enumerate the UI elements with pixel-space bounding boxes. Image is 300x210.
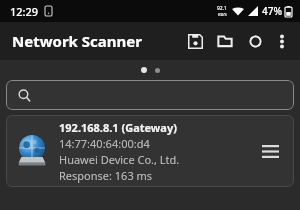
staticText: Response: 163 ms bbox=[59, 168, 153, 183]
staticText: 12:29 bbox=[10, 4, 39, 19]
button[interactable]: 192.168.8.1 (Gateway) bbox=[6, 115, 294, 187]
staticText: Network Scanner bbox=[12, 31, 142, 51]
button[interactable]: Device options bbox=[256, 137, 284, 165]
button[interactable]: Search devices bbox=[6, 80, 294, 110]
button[interactable]: Save bbox=[180, 26, 210, 56]
staticText: 47% bbox=[262, 4, 282, 18]
button[interactable]: More options bbox=[270, 29, 294, 53]
button[interactable]: Refresh scan bbox=[240, 26, 270, 56]
staticText: Huawei Device Co., Ltd. bbox=[59, 152, 180, 167]
staticText: 14:77:40:64:00:d4 bbox=[59, 136, 150, 151]
staticText: KB/S bbox=[218, 12, 227, 17]
button[interactable]: Open folder bbox=[210, 26, 240, 56]
staticText: 192.168.8.1 (Gateway) bbox=[59, 120, 177, 135]
staticText: 92.1 bbox=[217, 5, 227, 12]
